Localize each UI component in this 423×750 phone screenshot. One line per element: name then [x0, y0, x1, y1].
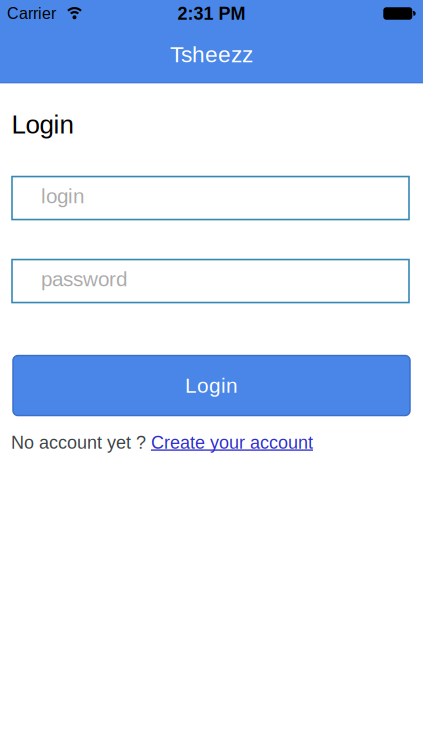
staticText: login: [41, 184, 84, 208]
button[interactable]: login: [12, 176, 409, 219]
staticText: Carrier: [7, 5, 56, 22]
staticText: Login: [185, 374, 238, 397]
staticText: Login: [11, 110, 73, 139]
staticText: No account yet ?: [11, 432, 151, 453]
staticText: Tsheezz: [170, 42, 253, 67]
button[interactable]: Login: [13, 355, 410, 415]
staticText: password: [41, 267, 127, 291]
button[interactable]: Create your account: [151, 432, 313, 453]
staticText: 2:31 PM: [177, 3, 245, 23]
staticText: Create your account: [151, 432, 313, 453]
button[interactable]: password: [12, 259, 409, 302]
